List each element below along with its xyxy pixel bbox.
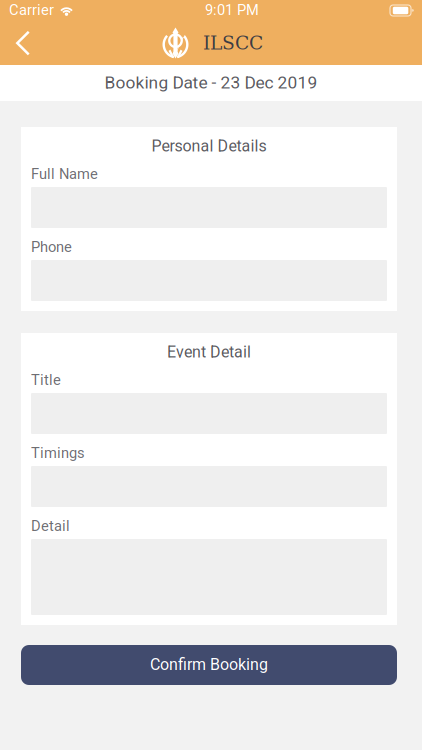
staticText: Phone — [31, 237, 72, 258]
staticText: 9:01 PM — [205, 0, 259, 21]
button[interactable]: Confirm Booking — [21, 645, 397, 685]
staticText: Carrier — [9, 0, 54, 21]
staticText: Personal Details — [151, 135, 266, 158]
staticText: Event Detail — [167, 341, 251, 364]
staticText: Timings — [31, 443, 85, 464]
staticText: ILSCC — [203, 32, 263, 54]
staticText: Detail — [31, 516, 70, 537]
staticText: Full Name — [31, 164, 98, 185]
staticText: Booking Date - 23 Dec 2019 — [104, 70, 317, 96]
button[interactable]: Back — [0, 21, 54, 65]
staticText: Title — [31, 370, 61, 391]
staticText: Confirm Booking — [150, 653, 268, 677]
